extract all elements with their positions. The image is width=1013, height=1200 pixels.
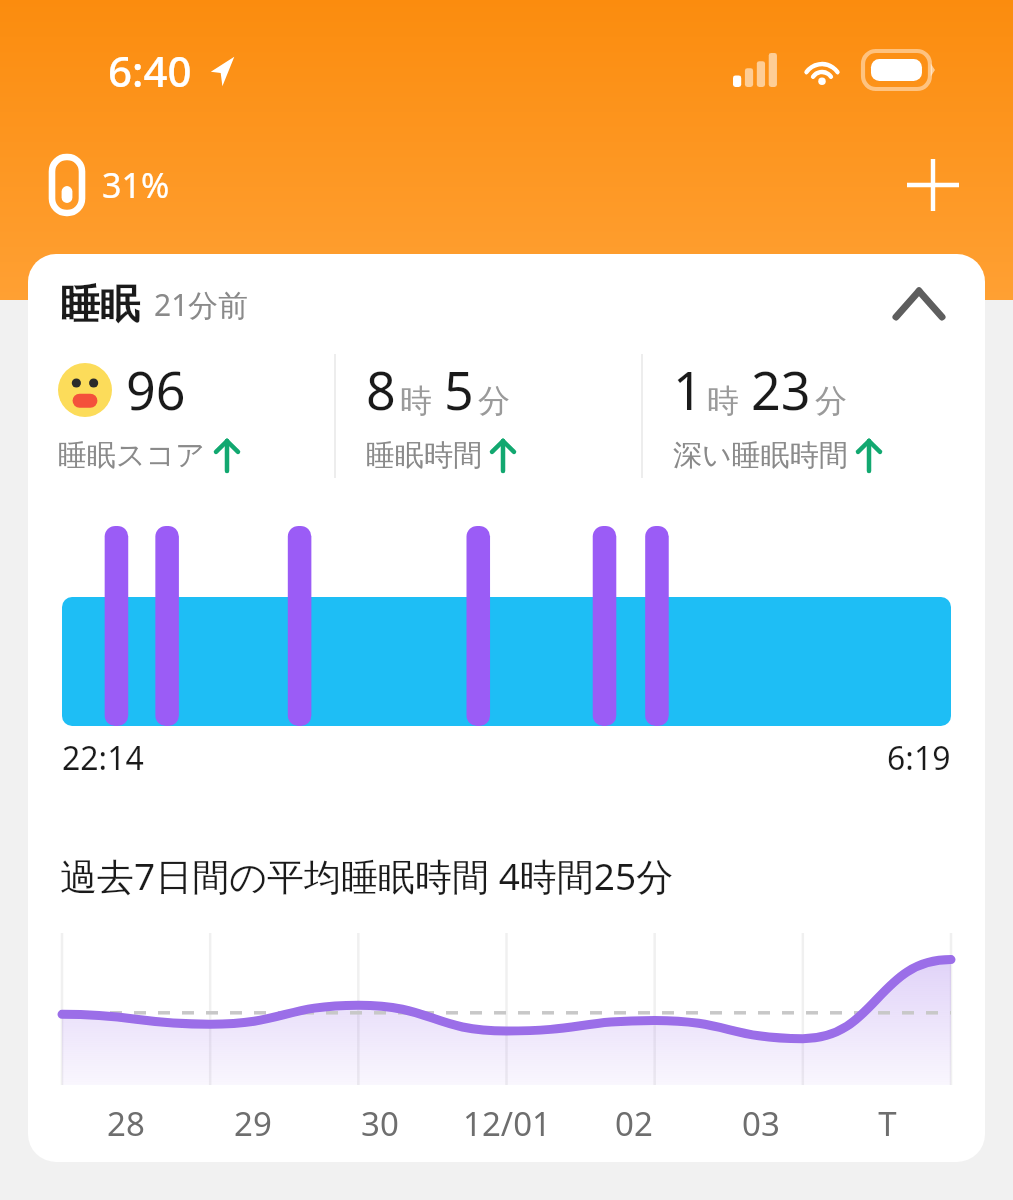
staticText: 31%	[102, 162, 170, 208]
button[interactable]: Collapse	[883, 268, 955, 340]
button[interactable]: 96	[28, 354, 334, 474]
staticText: 分	[478, 381, 510, 421]
staticText: 30	[361, 1101, 399, 1146]
staticText: T	[878, 1101, 897, 1146]
staticText: 睡眠時間	[366, 437, 482, 474]
staticText: 過去7日間の平均睡眠時間 4時間25分	[60, 850, 674, 901]
staticText: 6:40	[108, 42, 192, 99]
staticText: 深い睡眠時間	[673, 437, 848, 474]
staticText: 96	[126, 354, 186, 425]
staticText: 22:14	[62, 736, 144, 780]
staticText: 5	[444, 354, 474, 425]
staticText: 02	[615, 1101, 653, 1146]
staticText: 8	[366, 354, 396, 425]
staticText: 12/01	[463, 1101, 551, 1146]
button[interactable]: 1	[643, 354, 985, 474]
staticText: 睡眠スコア	[58, 437, 206, 474]
button[interactable]: 8	[336, 354, 641, 474]
button[interactable]: 睡眠	[28, 254, 985, 354]
staticText: 分	[815, 381, 847, 421]
staticText: 28	[107, 1101, 145, 1146]
staticText: 時	[400, 381, 432, 421]
staticText: 23	[751, 354, 811, 425]
staticText: 時	[707, 381, 739, 421]
staticText: 03	[742, 1101, 780, 1146]
staticText: 睡眠	[60, 279, 140, 329]
staticText: 6:19	[887, 736, 951, 780]
staticText: 21分前	[154, 284, 249, 325]
staticText: 29	[234, 1101, 272, 1146]
button[interactable]: Add	[893, 145, 973, 225]
staticText: 1	[673, 354, 703, 425]
